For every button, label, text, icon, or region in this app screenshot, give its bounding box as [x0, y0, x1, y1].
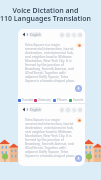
button[interactable]: Action 1 [65, 107, 71, 113]
button[interactable]: Action 2 [71, 32, 77, 38]
button[interactable]: Action 0 [59, 32, 65, 38]
staticText: Translate [22, 98, 34, 102]
button[interactable]: Action 0 [59, 107, 65, 113]
staticText: Tetra Square is a major commercial inter… [25, 118, 78, 158]
staticText: Phrases [57, 98, 67, 102]
button[interactable]: Microphone [75, 155, 82, 162]
button[interactable]: Phrases [51, 96, 68, 104]
button[interactable]: Edit [76, 42, 82, 48]
staticText: English [30, 108, 41, 112]
button[interactable]: Action 2 [71, 107, 77, 113]
button[interactable]: English [29, 107, 42, 112]
button[interactable]: Speak [22, 32, 27, 37]
button[interactable]: Translate [18, 96, 34, 104]
staticText: Dictionary [38, 98, 51, 102]
button[interactable]: Dictionary [34, 96, 51, 104]
staticText: Favorite [73, 98, 84, 102]
button[interactable]: Microphone [75, 85, 82, 92]
button[interactable]: Action 3 [77, 32, 83, 38]
button[interactable]: Edit [76, 117, 82, 123]
button[interactable]: Action 1 [65, 32, 71, 38]
staticText: Tetra Square is a major commercial inter… [25, 43, 78, 83]
staticText: English [30, 33, 41, 37]
button[interactable]: Action 3 [77, 107, 83, 113]
button[interactable]: Favorite [68, 96, 85, 104]
button[interactable]: Speak [22, 107, 27, 112]
staticText: Voice Dictation and 110 Languages Transl… [0, 6, 96, 23]
button[interactable]: English [29, 32, 42, 37]
